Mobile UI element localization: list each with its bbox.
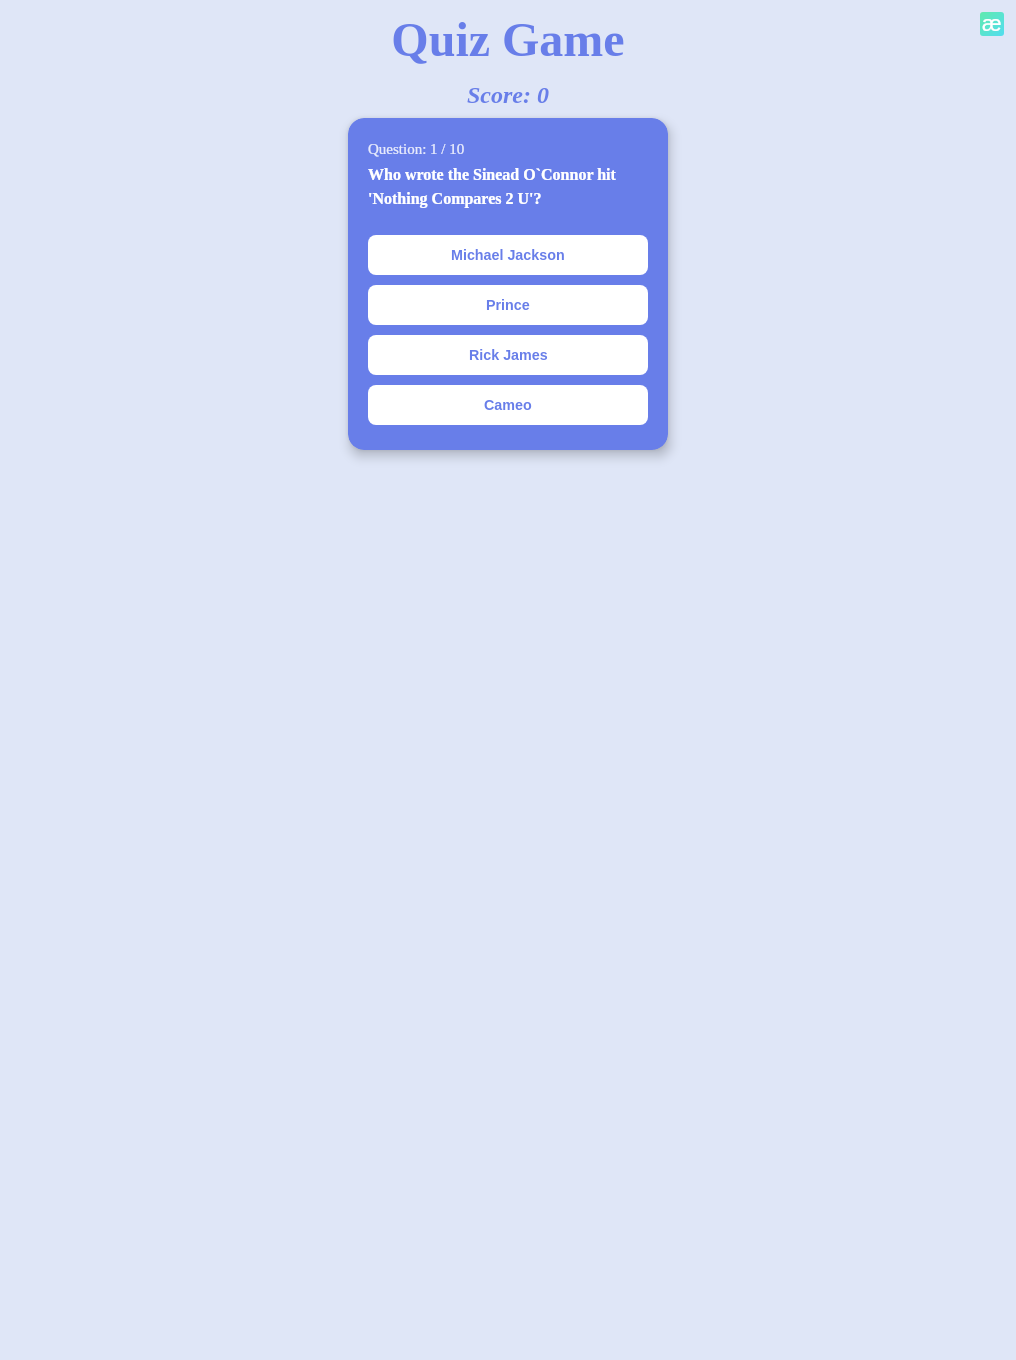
staticText: Rick James — [469, 347, 548, 363]
button[interactable]: Michael Jackson — [368, 235, 648, 275]
button[interactable]: Cameo — [368, 385, 648, 425]
staticText: Cameo — [484, 397, 532, 413]
button[interactable]: Rick James — [368, 335, 648, 375]
staticText: Michael Jackson — [451, 247, 565, 263]
button[interactable]: App logo — [980, 12, 1004, 36]
staticText: Score: 0 — [467, 82, 549, 109]
staticText: Prince — [486, 297, 530, 313]
staticText: æ — [982, 12, 1002, 35]
button[interactable]: Prince — [368, 285, 648, 325]
staticText: Question: 1 / 10 — [368, 141, 465, 158]
staticText: Quiz Game — [391, 13, 625, 66]
staticText: Who wrote the Sinead O`Connor hit 'Nothi… — [368, 166, 616, 208]
